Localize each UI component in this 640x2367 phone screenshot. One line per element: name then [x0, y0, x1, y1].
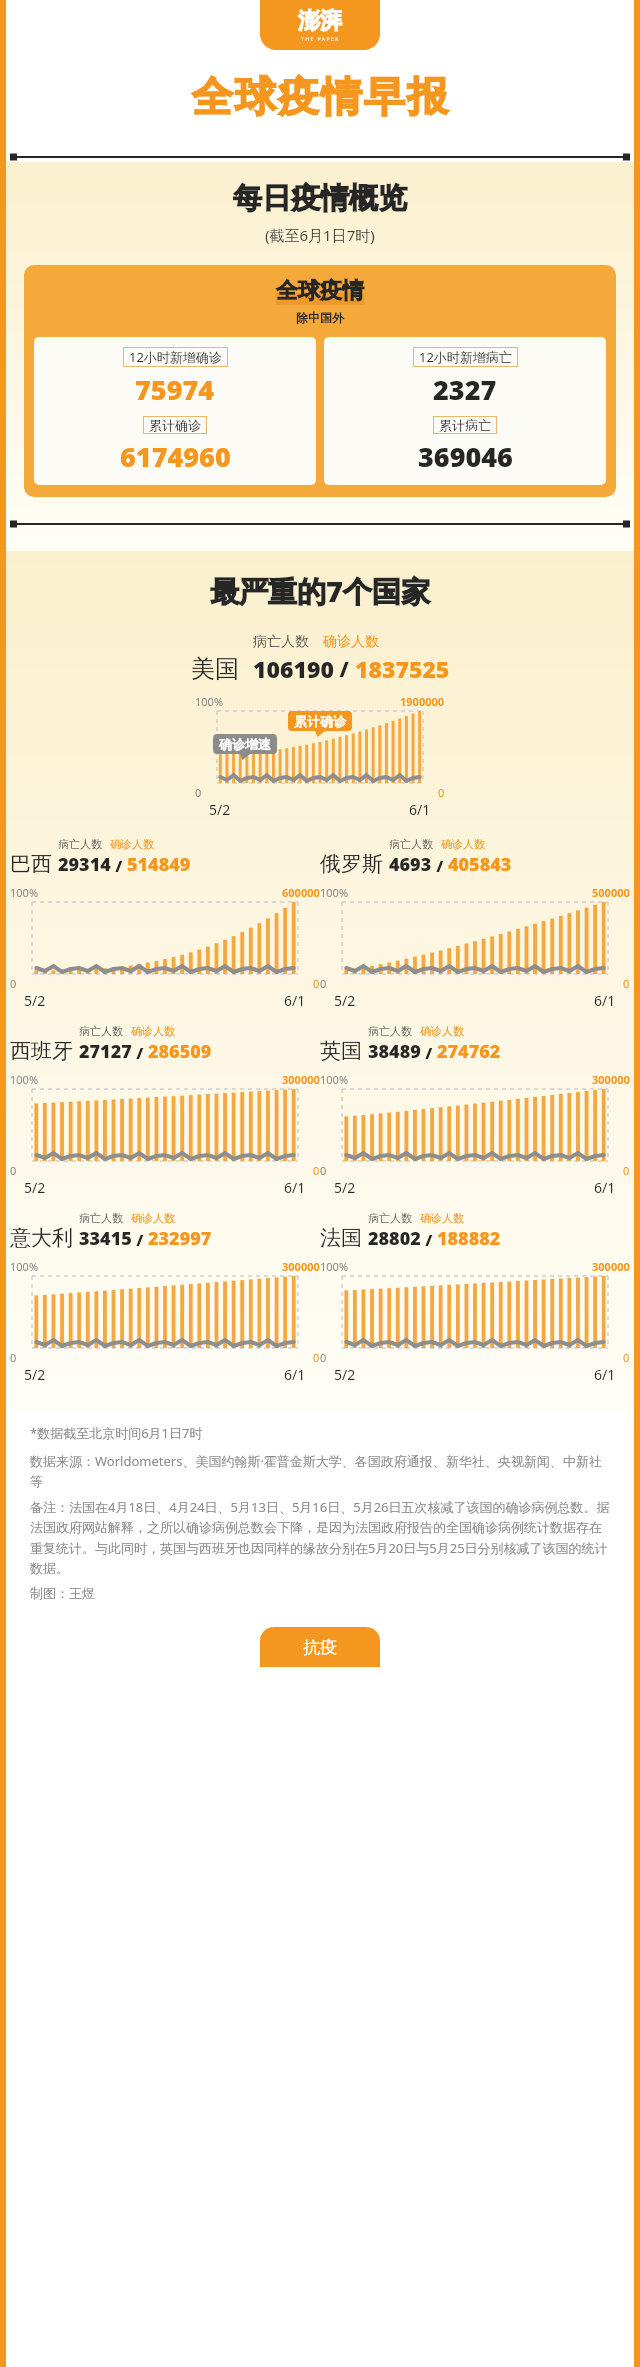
staticText: 1900000 [400, 694, 445, 709]
staticText: 确诊人数 [420, 1211, 464, 1225]
staticText: 274762 [437, 1039, 501, 1064]
button[interactable]: 俄罗斯 [320, 837, 630, 1010]
staticText: 0 [10, 1163, 17, 1178]
staticText: 405843 [448, 852, 512, 877]
staticText: 6/1 [284, 1178, 306, 1197]
staticText: 232997 [148, 1226, 212, 1251]
staticText: 0 [623, 1350, 630, 1365]
button[interactable]: 12小时新增病亡 [324, 337, 606, 485]
button[interactable]: The Paper logo [260, 0, 380, 50]
staticText: 0 [320, 1163, 327, 1178]
staticText: / [132, 1229, 148, 1251]
staticText: 6/1 [594, 1178, 616, 1197]
staticText: 27127 [79, 1039, 132, 1064]
staticText: 5/2 [24, 1178, 46, 1197]
staticText: 确诊人数 [420, 1024, 464, 1038]
staticText: 188882 [437, 1226, 501, 1251]
button[interactable]: 全球疫情 [24, 265, 616, 497]
staticText: 6174960 [120, 438, 231, 475]
staticText: 12小时新增确诊 [129, 348, 222, 366]
staticText: 6/1 [594, 991, 616, 1010]
button[interactable]: 12小时新增确诊 [34, 337, 316, 485]
staticText: 75974 [135, 371, 215, 408]
staticText: / [111, 855, 127, 877]
staticText: / [421, 1042, 437, 1064]
staticText: 5/2 [334, 1178, 356, 1197]
button[interactable]: 巴西 [10, 837, 320, 1010]
staticText: 确诊人数 [110, 837, 154, 851]
staticText: 5/2 [334, 991, 356, 1010]
staticText: 抗疫 [303, 1637, 337, 1658]
staticText: 2327 [433, 371, 497, 408]
staticText: 28802 [368, 1226, 421, 1251]
staticText: 514849 [127, 852, 191, 877]
staticText: 100% [195, 694, 224, 709]
staticText: 5/2 [24, 991, 46, 1010]
staticText: 0 [623, 976, 630, 991]
staticText: THE PAPER [301, 36, 340, 43]
button[interactable]: 意大利 [10, 1211, 320, 1384]
staticText: 俄罗斯 [320, 851, 383, 877]
button[interactable]: 英国 [320, 1024, 630, 1197]
staticText: 286509 [148, 1039, 212, 1064]
staticText: 英国 [320, 1038, 362, 1064]
staticText: 300000 [592, 1072, 630, 1087]
staticText: 美国 [191, 654, 239, 684]
staticText: 0 [313, 1350, 320, 1365]
staticText: 0 [320, 976, 327, 991]
button[interactable]: 西班牙 [10, 1024, 320, 1197]
staticText: 病亡人数 [368, 1024, 412, 1038]
staticText: *数据截至北京时间6月1日7时 [30, 1424, 203, 1442]
staticText: 500000 [592, 885, 630, 900]
staticText: / [334, 655, 355, 684]
staticText: 病亡人数 [58, 837, 102, 851]
staticText: 6/1 [409, 800, 431, 819]
staticText: 每日疫情概览 [233, 180, 407, 217]
staticText: 100% [320, 885, 349, 900]
staticText: 确诊人数 [323, 633, 379, 651]
staticText: 0 [10, 1350, 17, 1365]
staticText: 100% [10, 1259, 39, 1274]
staticText: 33415 [79, 1226, 132, 1251]
staticText: 1837525 [355, 653, 450, 684]
staticText: 600000 [282, 885, 320, 900]
button[interactable]: 抗疫 tag [260, 1627, 380, 1667]
staticText: 确诊人数 [131, 1211, 175, 1225]
staticText: 备注：法国在4月18日、4月24日、5月13日、5月16日、5月26日五次核减了… [30, 1498, 610, 1577]
staticText: 38489 [368, 1039, 421, 1064]
staticText: 病亡人数 [79, 1024, 123, 1038]
staticText: 100% [10, 1072, 39, 1087]
staticText: 0 [438, 785, 445, 800]
staticText: 0 [313, 976, 320, 991]
staticText: 病亡人数 [253, 633, 309, 651]
staticText: 0 [195, 785, 202, 800]
staticText: 369046 [418, 438, 513, 475]
staticText: 0 [10, 976, 17, 991]
staticText: 5/2 [24, 1365, 46, 1384]
button[interactable]: 法国 [320, 1211, 630, 1384]
staticText: 确诊增速 [219, 736, 271, 752]
staticText: 300000 [592, 1259, 630, 1274]
staticText: 澎湃 [298, 7, 342, 35]
staticText: 300000 [282, 1259, 320, 1274]
staticText: (截至6月1日7时) [265, 225, 375, 245]
staticText: 法国 [320, 1225, 362, 1251]
staticText: 意大利 [10, 1225, 73, 1251]
staticText: 数据来源：Worldometers、美国约翰斯·霍普金斯大学、各国政府通报、新华… [30, 1452, 610, 1490]
staticText: 除中国外 [296, 310, 344, 325]
staticText: 累计病亡 [439, 417, 491, 433]
staticText: 累计确诊 [149, 417, 201, 433]
staticText: / [421, 1229, 437, 1251]
staticText: 6/1 [284, 991, 306, 1010]
staticText: 累计确诊 [294, 713, 346, 729]
staticText: 300000 [282, 1072, 320, 1087]
staticText: 全球疫情早报 [191, 72, 449, 124]
staticText: 病亡人数 [79, 1211, 123, 1225]
staticText: 5/2 [209, 800, 231, 819]
staticText: 制图：王煜 [30, 1585, 95, 1601]
staticText: 106190 [253, 653, 334, 684]
staticText: 100% [320, 1259, 349, 1274]
button[interactable]: 美国 [0, 633, 640, 684]
staticText: 最严重的7个国家 [210, 571, 430, 611]
staticText: 100% [320, 1072, 349, 1087]
